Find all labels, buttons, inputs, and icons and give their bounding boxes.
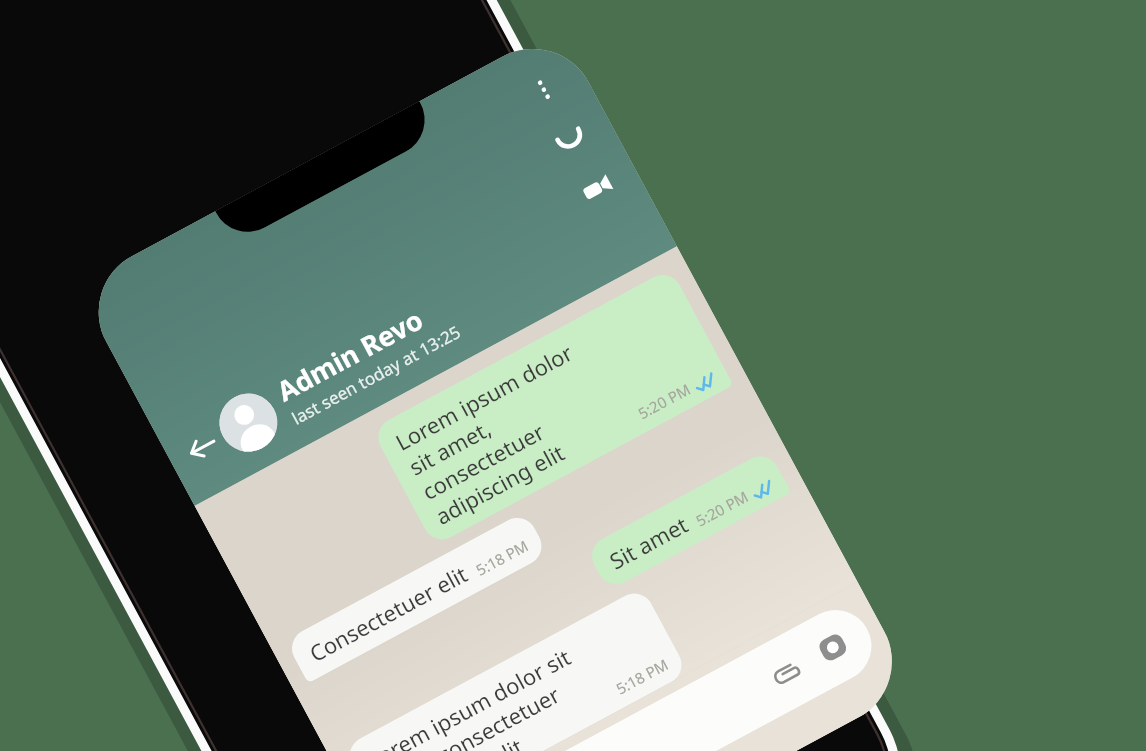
button[interactable]: Contact photo bbox=[209, 383, 288, 462]
button[interactable]: Sit amet bbox=[585, 449, 791, 591]
button[interactable]: Lorem ipsum dolor sit amet, consectetuer… bbox=[343, 586, 689, 751]
button[interactable]: Back bbox=[171, 416, 234, 478]
button[interactable]: Consectetuer elit bbox=[285, 511, 548, 683]
button[interactable]: Video call bbox=[560, 152, 633, 225]
button[interactable]: More options bbox=[507, 53, 580, 126]
staticText: 5:18 PM bbox=[472, 535, 532, 580]
staticText: 5:20 PM bbox=[634, 378, 694, 423]
staticText: Lorem ipsum dolor sit amet, consectetuer… bbox=[362, 634, 613, 751]
staticText: Sit amet bbox=[604, 509, 693, 576]
staticText: Admin Revo bbox=[270, 300, 429, 409]
staticText: Consectetuer elit bbox=[304, 558, 473, 668]
button[interactable]: Voice call bbox=[534, 102, 607, 176]
staticText: last seen today at 13:25 bbox=[288, 320, 464, 430]
staticText: Lorem ipsum dolor sit amet, consectetuer… bbox=[390, 327, 635, 531]
button[interactable]: Emoji bbox=[392, 597, 884, 751]
button[interactable]: Attach file bbox=[759, 647, 811, 699]
button[interactable]: Camera bbox=[807, 622, 859, 673]
button[interactable]: Lorem ipsum dolor sit amet, consectetuer… bbox=[371, 268, 734, 546]
staticText: 5:20 PM bbox=[692, 486, 752, 530]
staticText: 5:18 PM bbox=[612, 654, 672, 698]
